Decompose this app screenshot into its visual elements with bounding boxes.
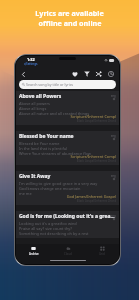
staticText: Where Your streams of abundance flow: [19, 151, 91, 156]
staticText: God knows change one mountain: [19, 186, 81, 191]
staticText: In the land that is plentiful: [19, 146, 68, 151]
staticText: Black Gospel/Inherent Chord: [76, 159, 116, 163]
button[interactable]: Grid: [85, 244, 119, 257]
button[interactable]: Give It Away: [16, 171, 119, 205]
staticText: Scripture/Inherent Compl: [70, 114, 116, 119]
button[interactable]: Favourites: [69, 68, 81, 80]
button[interactable]: Back: [18, 69, 28, 79]
button[interactable]: Blessed be Your name: [16, 131, 119, 165]
staticText: Black Gospel/Inherent Chord: [76, 119, 116, 123]
staticText: Above all Powers: [19, 93, 62, 100]
staticText: Scripture/Inherent Compl: [70, 154, 116, 159]
staticText: I'm willing to give good grace in a very…: [19, 181, 98, 186]
staticText: Archive: [29, 252, 39, 256]
staticText: Above all nature and all created things: [19, 111, 90, 116]
button[interactable]: Cloud: [51, 244, 85, 257]
staticText: eng: [111, 134, 116, 138]
button[interactable]: God is for me (Looking out it's a grea..…: [16, 211, 119, 238]
staticText: Blessed be Your name: [19, 141, 60, 146]
button[interactable]: Filter: [81, 68, 93, 80]
staticText: Looking out it's a greatfoo wind: [19, 221, 77, 226]
staticText: Lyrics are available: [35, 8, 104, 18]
staticText: Cloud: [64, 252, 72, 256]
staticText: Above all powers: [19, 101, 50, 106]
staticText: Praise all say? size count thy?: [19, 226, 73, 231]
staticText: Above all kings: [19, 106, 47, 111]
staticText: eng: [111, 174, 116, 178]
staticText: eng: [111, 214, 116, 218]
staticText: Search song by title or lyrics: [26, 82, 74, 87]
staticText: Give It Away: [19, 173, 51, 180]
staticText: Blessed be Your name: [19, 133, 74, 140]
staticText: God is for me (Looking out it's a grea..…: [19, 213, 115, 220]
button[interactable]: History: [105, 68, 117, 80]
button[interactable]: Archive: [16, 244, 51, 257]
staticText: God James/Inherent Gospel: [66, 194, 116, 199]
button[interactable]: Shuffle: [93, 68, 105, 80]
staticText: Black Gospel/Inherent Chord: [76, 199, 116, 203]
staticText: 1:32: [27, 57, 35, 62]
staticText: me me: [19, 191, 32, 196]
staticText: offline and online: [38, 18, 102, 28]
staticText: Something not describing oh by a rest: [19, 231, 89, 236]
staticText: Grid: [99, 252, 105, 256]
button[interactable]: Search song by title or lyrics: [19, 80, 116, 89]
button[interactable]: Above all Powers: [16, 91, 119, 125]
staticText: Settings: [26, 62, 38, 66]
staticText: eng: [111, 94, 116, 98]
